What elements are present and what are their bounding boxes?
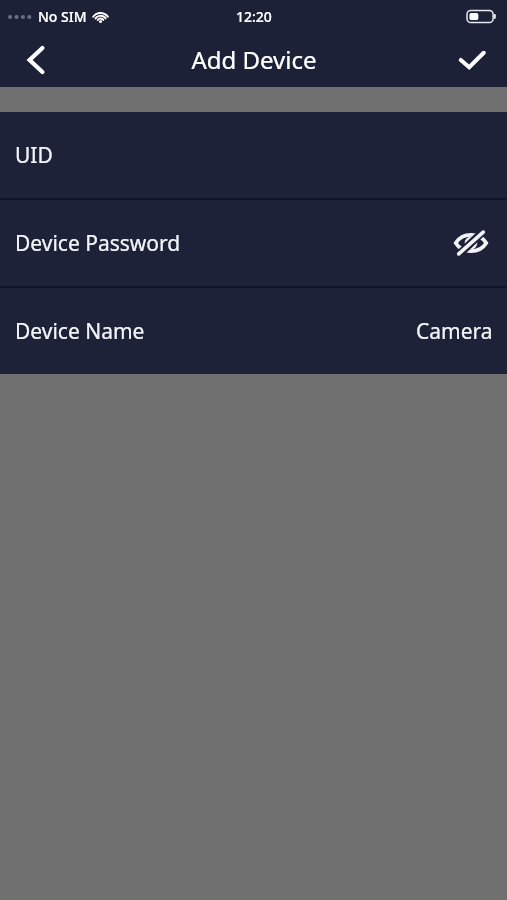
button[interactable]: Device Name — [0, 288, 507, 374]
button[interactable]: Show password — [449, 221, 493, 265]
staticText: No SIM — [38, 7, 87, 26]
button[interactable]: Back — [0, 32, 72, 87]
staticText: Device Name — [15, 317, 145, 346]
button[interactable]: UID — [0, 112, 507, 198]
button[interactable]: Device Password — [0, 200, 507, 286]
staticText: Device Password — [15, 229, 181, 258]
staticText: 12:20 — [236, 7, 272, 26]
staticText: Add Device — [191, 43, 317, 76]
staticText: Camera — [416, 317, 493, 346]
button[interactable]: Confirm — [437, 32, 507, 87]
staticText: UID — [15, 141, 53, 170]
